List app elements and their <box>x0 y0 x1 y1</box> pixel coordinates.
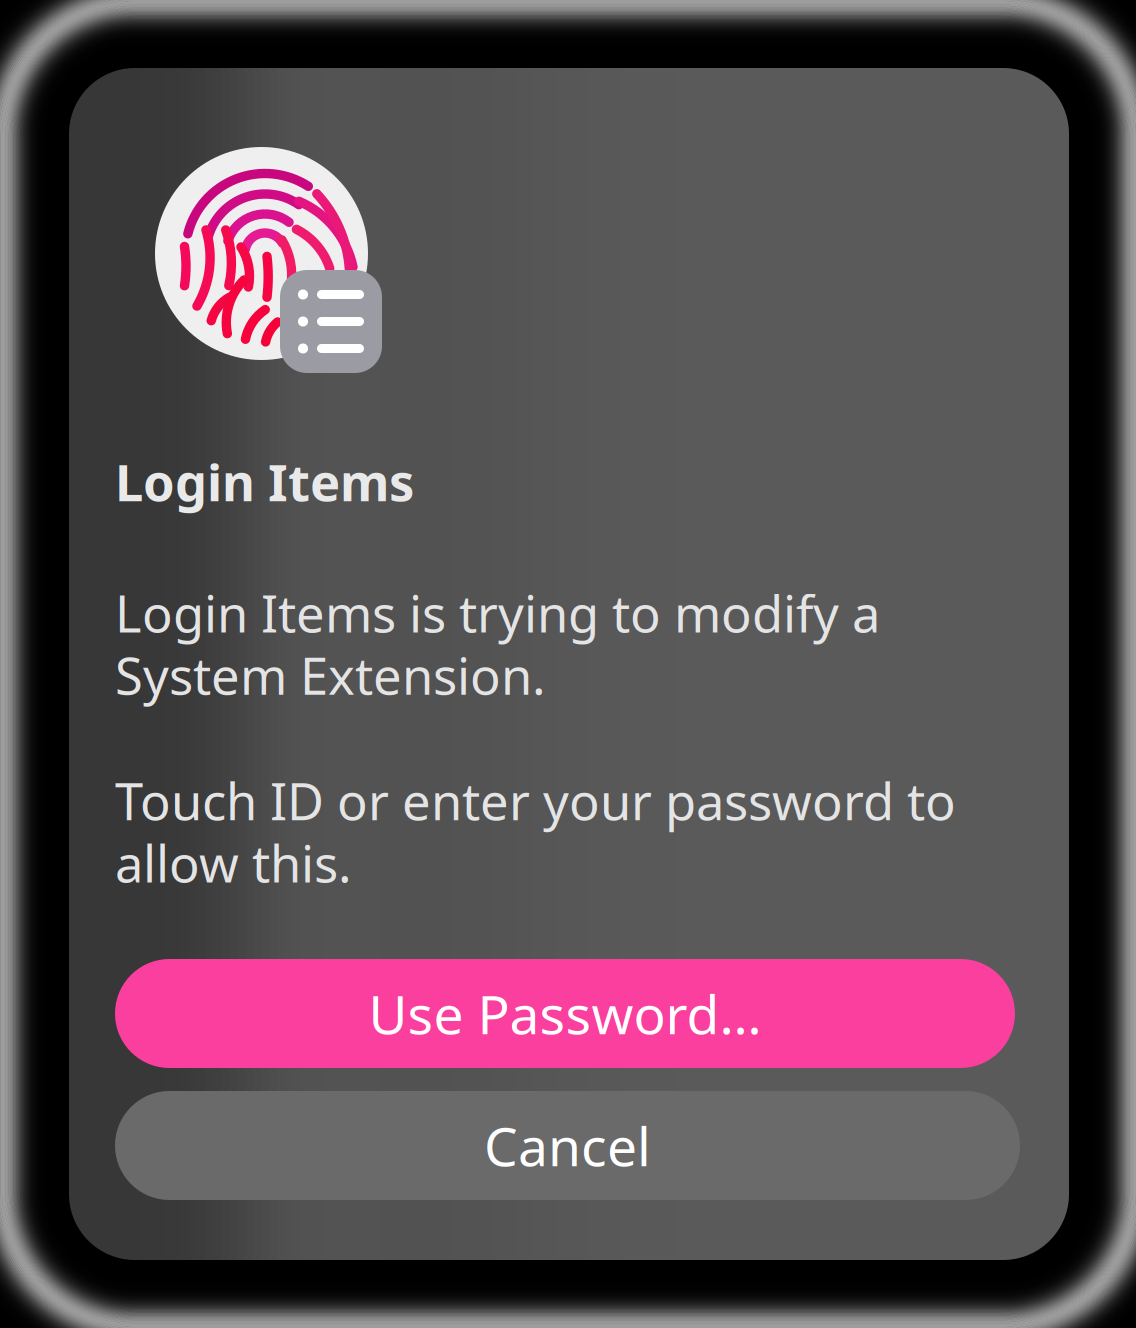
staticText: Use Password… <box>368 978 761 1049</box>
staticText: Touch ID or enter your password to allow… <box>115 767 956 896</box>
button[interactable]: Use Password… <box>115 959 1015 1068</box>
staticText: Login Items <box>115 448 414 515</box>
staticText: Cancel <box>484 1110 651 1181</box>
button[interactable]: Cancel <box>115 1091 1020 1200</box>
staticText: Login Items is trying to modify a System… <box>115 579 880 709</box>
